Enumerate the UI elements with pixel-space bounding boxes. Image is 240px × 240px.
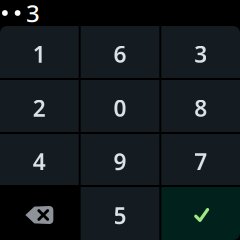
staticText: 8 [194,93,207,123]
staticText: 4 [33,146,46,176]
staticText: 3 [194,39,207,69]
button[interactable]: 9 [81,134,159,185]
button[interactable]: 2 [0,80,79,132]
staticText: 1 [33,39,46,69]
staticText: 7 [194,146,207,176]
staticText: 5 [113,200,126,230]
button[interactable]: 7 [161,134,240,185]
button[interactable]: 6 [81,26,159,78]
staticText: 9 [113,146,126,176]
staticText: 0 [113,93,126,123]
button[interactable]: 1 [0,26,79,78]
staticText: 6 [113,39,126,69]
staticText: 3 [26,0,40,29]
button[interactable]: 4 [0,134,79,185]
button[interactable]: Confirm passcode [161,187,240,240]
button[interactable]: 3 [161,26,240,78]
staticText: 2 [33,93,46,123]
button[interactable]: 0 [81,80,159,132]
button[interactable]: 8 [161,80,240,132]
button[interactable]: 5 [81,187,159,240]
button[interactable]: Delete [0,187,79,240]
